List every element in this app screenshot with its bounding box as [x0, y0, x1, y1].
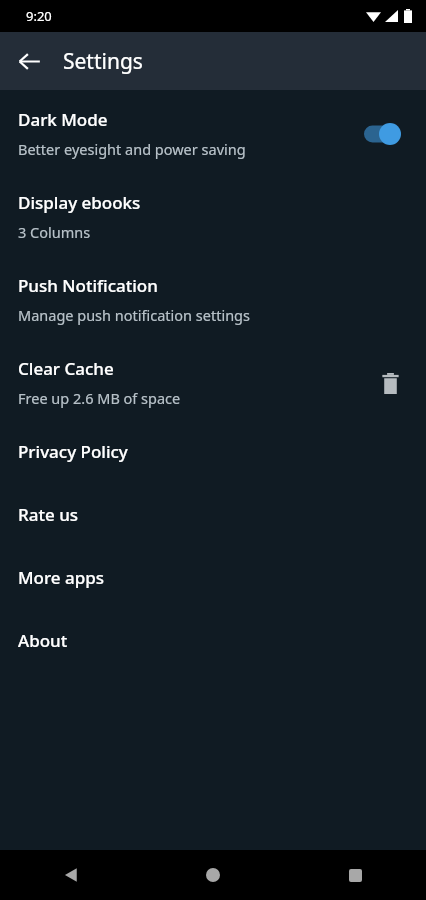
- button[interactable]: Dark Mode: [0, 108, 426, 159]
- button[interactable]: Recents: [331, 851, 379, 899]
- staticText: More apps: [18, 566, 105, 589]
- button[interactable]: More apps: [0, 566, 426, 589]
- staticText: Dark Mode: [18, 108, 108, 131]
- staticText: Privacy Policy: [18, 440, 128, 463]
- button[interactable]: Display ebooks: [0, 191, 426, 242]
- staticText: 9:20: [26, 7, 52, 25]
- button[interactable]: Back: [5, 37, 53, 85]
- staticText: Better eyesight and power saving: [18, 139, 246, 159]
- button[interactable]: Home: [189, 851, 237, 899]
- button[interactable]: Toggle dark mode: [354, 118, 408, 150]
- staticText: Clear Cache: [18, 357, 114, 380]
- staticText: Free up 2.6 MB of space: [18, 388, 181, 408]
- staticText: About: [18, 629, 68, 652]
- staticText: Settings: [63, 47, 143, 76]
- button[interactable]: Privacy Policy: [0, 440, 426, 463]
- button[interactable]: Clear Cache: [0, 357, 426, 408]
- staticText: Push Notification: [18, 274, 158, 297]
- staticText: Rate us: [18, 503, 79, 526]
- button[interactable]: About: [0, 629, 426, 652]
- button[interactable]: Clear cache: [372, 365, 408, 401]
- button[interactable]: Push Notification: [0, 274, 426, 325]
- staticText: 3 Columns: [18, 222, 91, 242]
- staticText: Display ebooks: [18, 191, 141, 214]
- staticText: Manage push notification settings: [18, 305, 250, 325]
- button[interactable]: Back: [47, 851, 95, 899]
- button[interactable]: Rate us: [0, 503, 426, 526]
